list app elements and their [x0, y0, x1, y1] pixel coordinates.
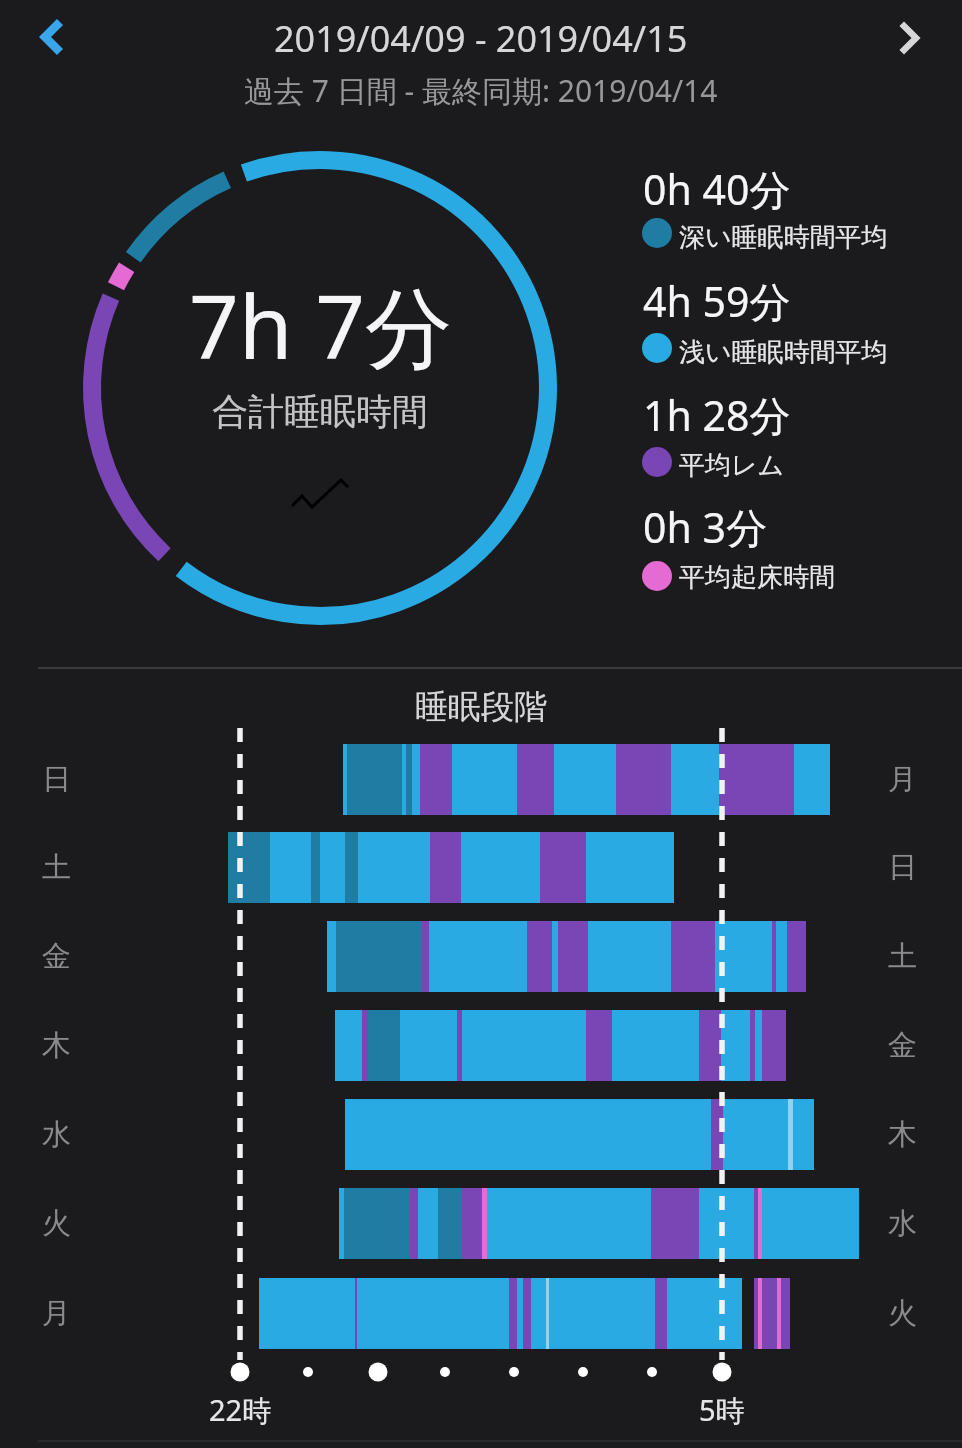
- staticText: 金: [42, 938, 71, 975]
- staticText: 木: [42, 1027, 71, 1064]
- staticText: 平均レム: [679, 449, 785, 482]
- button[interactable]: [28, 8, 84, 68]
- staticText: 金: [888, 1027, 917, 1064]
- staticText: 水: [42, 1116, 71, 1153]
- staticText: 平均起床時間: [679, 561, 835, 594]
- staticText: 0h 3分: [643, 499, 767, 555]
- staticText: 木: [888, 1116, 917, 1153]
- staticText: 深い睡眠時間平均: [679, 221, 888, 254]
- staticText: 火: [888, 1295, 917, 1332]
- staticText: 水: [888, 1205, 917, 1242]
- staticText: 1h 28分: [643, 387, 791, 443]
- staticText: 月: [888, 761, 917, 798]
- staticText: 土: [42, 849, 71, 886]
- staticText: 0h 40分: [643, 161, 791, 217]
- staticText: 合計睡眠時間: [212, 389, 428, 434]
- staticText: 浅い睡眠時間平均: [679, 336, 888, 369]
- staticText: 月: [42, 1295, 71, 1332]
- staticText: 過去 7 日間 - 最終同期: 2019/04/14: [244, 70, 718, 111]
- staticText: 4h 59分: [643, 273, 791, 329]
- staticText: 睡眠段階: [415, 686, 547, 728]
- staticText: 22時: [209, 1390, 272, 1430]
- staticText: 火: [42, 1205, 71, 1242]
- button[interactable]: [882, 8, 938, 68]
- staticText: 5時: [699, 1390, 745, 1430]
- staticText: 2019/04/09 - 2019/04/15: [274, 14, 688, 63]
- staticText: 土: [888, 938, 917, 975]
- staticText: 日: [888, 849, 917, 886]
- staticText: 7h 7分: [189, 266, 452, 385]
- staticText: 日: [42, 761, 71, 798]
